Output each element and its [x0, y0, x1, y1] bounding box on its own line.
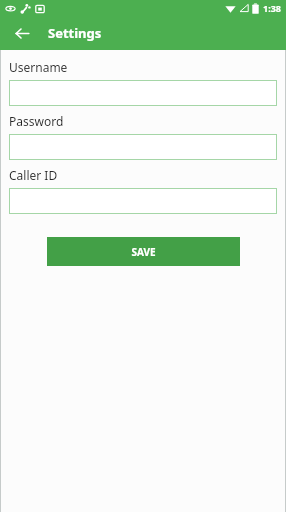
- button[interactable]: [9, 134, 277, 160]
- staticText: SAVE: [131, 245, 156, 259]
- button[interactable]: [9, 188, 277, 214]
- button[interactable]: [9, 80, 277, 106]
- button[interactable]: Back: [8, 19, 36, 47]
- staticText: 1:38: [263, 2, 281, 14]
- staticText: Username: [9, 59, 68, 75]
- staticText: Settings: [48, 24, 102, 42]
- staticText: Caller ID: [9, 167, 58, 183]
- staticText: Password: [9, 113, 64, 129]
- button[interactable]: SAVE: [47, 237, 240, 266]
